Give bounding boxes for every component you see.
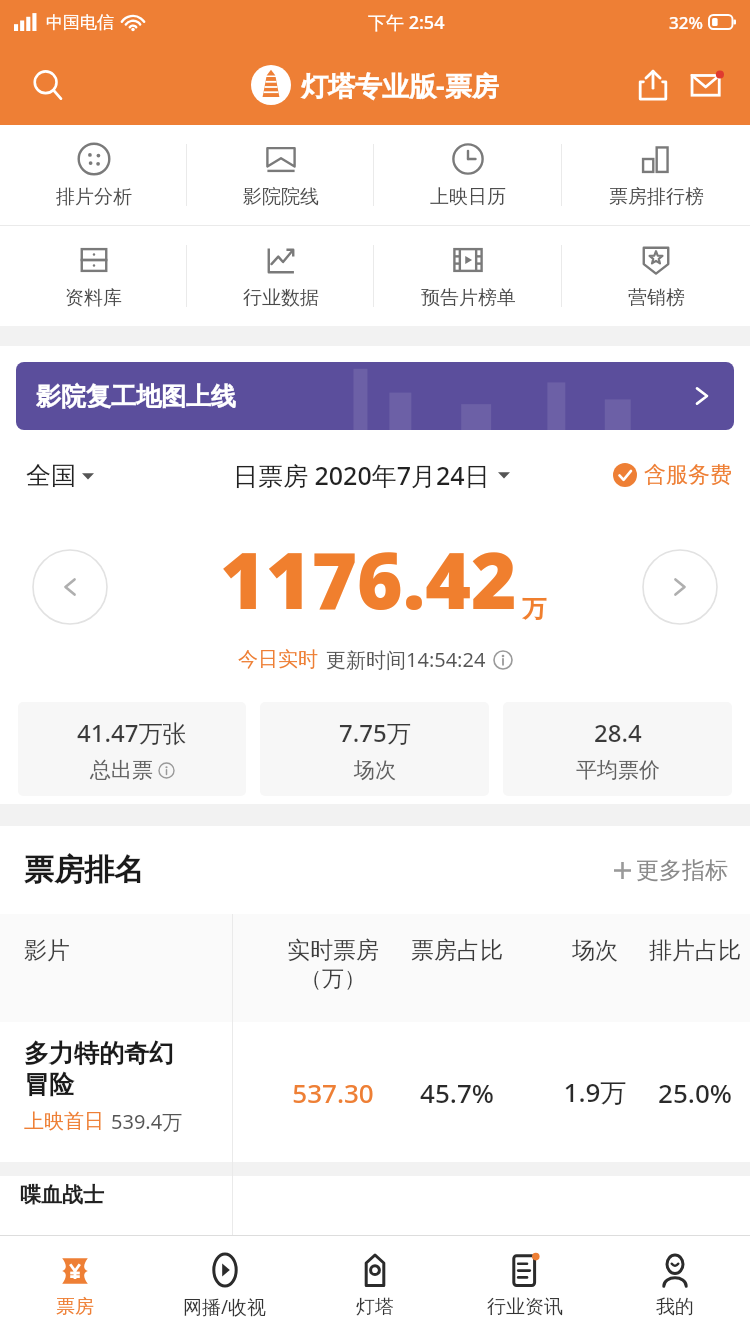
- staticText: 灯塔: [356, 1295, 394, 1319]
- staticText: 多力特的奇幻: [24, 1038, 174, 1069]
- staticText: 全国: [26, 460, 76, 491]
- staticText: 中国电信: [46, 12, 114, 33]
- staticText: 1.9万: [540, 1074, 650, 1110]
- button[interactable]: 更多指标: [614, 856, 728, 885]
- staticText: 实时票房: [287, 936, 379, 965]
- button[interactable]: 多力特的奇幻: [0, 1022, 750, 1162]
- button[interactable]: Share: [626, 58, 680, 112]
- button[interactable]: 上映日历: [374, 125, 562, 225]
- staticText: 日票房 2020年7月24日: [233, 458, 490, 492]
- staticText: 我的: [656, 1295, 694, 1319]
- button[interactable]: 影院复工地图上线: [16, 362, 734, 430]
- button[interactable]: 网播/收视: [150, 1236, 300, 1334]
- button[interactable]: 影院院线: [187, 125, 374, 225]
- button[interactable]: Previous day: [32, 549, 108, 625]
- staticText: 票房排名: [24, 851, 144, 889]
- staticText: 灯塔专业版-票房: [301, 67, 499, 104]
- button[interactable]: 日票房 2020年7月24日: [233, 458, 510, 492]
- staticText: 平均票价: [576, 757, 660, 783]
- staticText: 喋血战士: [20, 1182, 104, 1208]
- staticText: 总出票: [90, 757, 153, 783]
- staticText: 今日实时: [238, 647, 318, 672]
- button[interactable]: Info: [493, 650, 513, 670]
- staticText: 营销榜: [628, 286, 685, 310]
- staticText: 票房: [56, 1295, 94, 1319]
- staticText: 场次: [540, 936, 650, 965]
- staticText: 万: [522, 594, 546, 624]
- staticText: 41.47万张: [77, 716, 187, 749]
- staticText: 537.30: [268, 1075, 398, 1110]
- staticText: 下午 2:54: [368, 10, 445, 35]
- staticText: 票房占比: [395, 936, 519, 965]
- button[interactable]: Messages: [680, 58, 734, 112]
- button[interactable]: 资料库: [0, 226, 187, 326]
- button[interactable]: 我的: [600, 1236, 750, 1334]
- staticText: 上映首日: [24, 1109, 104, 1134]
- staticText: 排片分析: [56, 185, 132, 209]
- staticText: 影片: [24, 936, 70, 965]
- staticText: 更新时间14:54:24: [326, 646, 486, 673]
- staticText: 1176.42: [220, 526, 517, 632]
- staticText: 排片占比: [640, 936, 750, 965]
- button[interactable]: 41.47万张: [18, 702, 246, 796]
- button[interactable]: 全国: [26, 460, 94, 491]
- button[interactable]: Next day: [642, 549, 718, 625]
- staticText: 45.7%: [395, 1075, 519, 1110]
- staticText: （万）: [300, 965, 366, 993]
- staticText: 资料库: [65, 286, 122, 310]
- button[interactable]: 28.4: [503, 702, 732, 796]
- staticText: 32%: [669, 11, 703, 34]
- staticText: 行业数据: [243, 286, 319, 310]
- staticText: 含服务费: [644, 461, 732, 489]
- button[interactable]: 票房: [0, 1236, 150, 1334]
- staticText: 7.75万: [339, 716, 411, 749]
- staticText: 539.4万: [111, 1108, 183, 1135]
- staticText: 28.4: [594, 716, 642, 749]
- button[interactable]: 7.75万: [260, 702, 489, 796]
- staticText: 预告片榜单: [421, 286, 516, 310]
- staticText: 更多指标: [636, 856, 728, 885]
- button[interactable]: Search: [22, 59, 74, 111]
- staticText: 票房排行榜: [609, 185, 704, 209]
- staticText: 场次: [354, 757, 396, 783]
- staticText: 影院院线: [243, 185, 319, 209]
- staticText: 行业资讯: [487, 1295, 563, 1319]
- staticText: 网播/收视: [183, 1294, 267, 1320]
- staticText: 冒险: [24, 1069, 74, 1100]
- staticText: 25.0%: [640, 1075, 750, 1110]
- staticText: 影院复工地图上线: [36, 381, 236, 412]
- button[interactable]: 预告片榜单: [374, 226, 562, 326]
- button[interactable]: 营销榜: [562, 226, 750, 326]
- button[interactable]: 票房排行榜: [562, 125, 750, 225]
- button[interactable]: 排片分析: [0, 125, 187, 225]
- staticText: 上映日历: [430, 185, 506, 209]
- button[interactable]: 灯塔: [300, 1236, 450, 1334]
- button[interactable]: 行业数据: [187, 226, 374, 326]
- button[interactable]: 含服务费: [613, 461, 732, 489]
- button[interactable]: 行业资讯: [450, 1236, 600, 1334]
